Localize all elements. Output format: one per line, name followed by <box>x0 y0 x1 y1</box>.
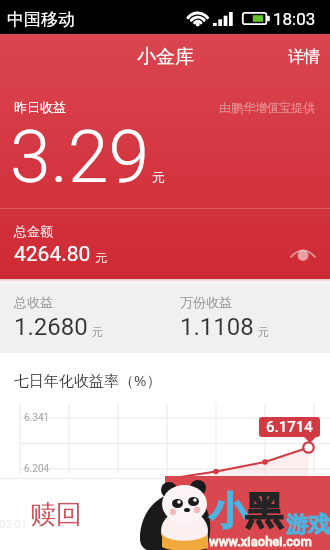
staticText: 中国移动 <box>7 9 75 30</box>
staticText: 元 <box>152 169 165 185</box>
button[interactable]: 赎回 <box>0 486 330 542</box>
staticText: 6.341 <box>24 412 50 424</box>
staticText: 小 <box>209 487 247 535</box>
button[interactable]: 万份收益 <box>165 279 330 353</box>
staticText: 元 <box>258 325 269 339</box>
staticText: 1.1108 <box>180 313 254 341</box>
staticText: 18:03 <box>273 9 316 29</box>
button[interactable]: 小金库 <box>137 45 194 69</box>
staticText: 6.1714 <box>266 418 313 436</box>
staticText: 七日年化收益率（%） <box>14 370 162 390</box>
staticText: 昨日收益 <box>14 99 66 115</box>
staticText: www.xiaohei.com <box>209 534 312 549</box>
staticText: 6.204 <box>24 463 50 475</box>
staticText: -02-01 <box>0 518 27 531</box>
staticText: 由鹏华增值宝提供 <box>219 100 315 115</box>
staticText: 黑 <box>245 487 283 535</box>
staticText: 赎回 <box>30 498 82 531</box>
staticText: 元 <box>92 325 103 339</box>
staticText: 元 <box>95 250 107 265</box>
staticText: 3.29 <box>10 114 149 200</box>
staticText: 4264.80 <box>14 242 91 267</box>
button[interactable]: Toggle balance visibility <box>288 240 318 266</box>
staticText: 游戏 <box>286 511 330 539</box>
button[interactable]: 详情 <box>278 34 330 80</box>
staticText: 总收益 <box>14 294 53 310</box>
staticText: 总金额 <box>14 223 53 239</box>
button[interactable]: 总收益 <box>0 279 165 353</box>
staticText: 万份收益 <box>180 294 232 310</box>
staticText: 详情 <box>288 47 320 67</box>
staticText: 1.2680 <box>14 313 88 341</box>
